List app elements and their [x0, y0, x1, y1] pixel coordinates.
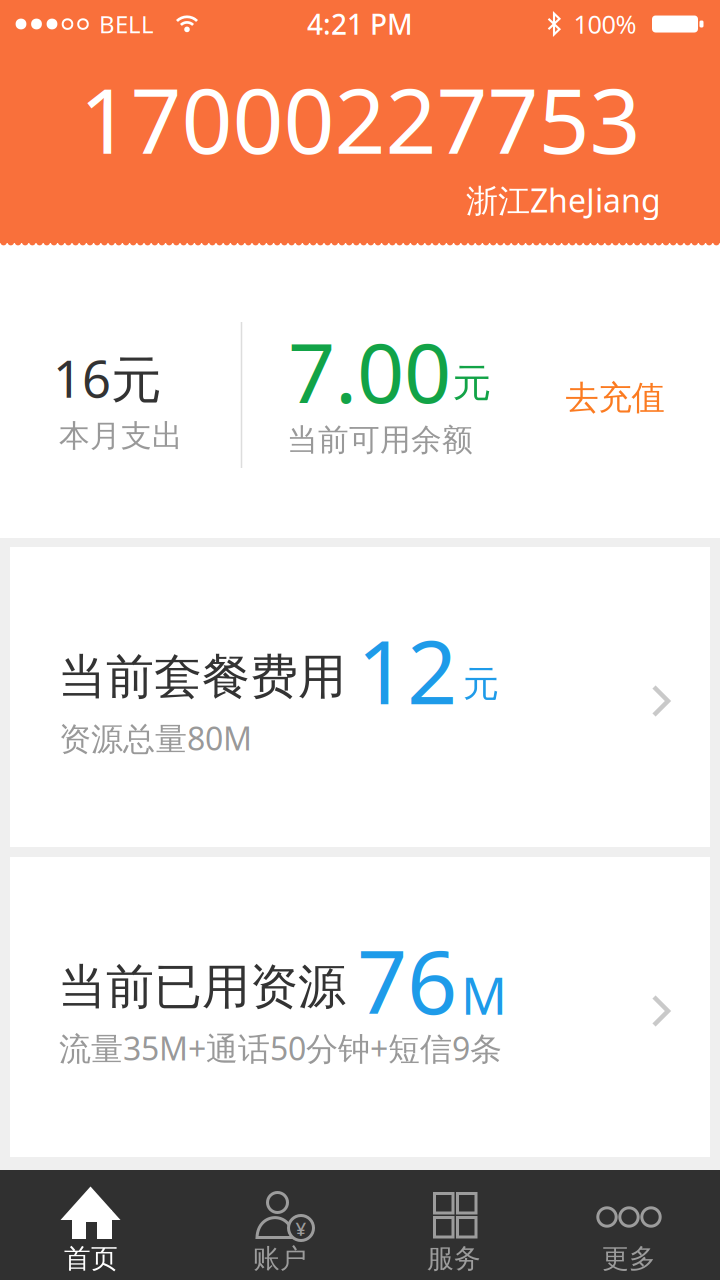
staticText: 16元 [53, 344, 162, 412]
staticText: 元 [452, 359, 491, 407]
staticText: 4:21 PM [307, 5, 413, 43]
staticText: 当前可用余额 [287, 421, 473, 459]
staticText: 去充值 [565, 377, 664, 418]
button[interactable]: 去充值 [545, 368, 685, 428]
staticText: 元 [463, 662, 499, 706]
button[interactable]: 当前已用资源 [10, 857, 710, 1157]
staticText: 本月支出 [59, 417, 183, 455]
staticText: 76 [357, 922, 457, 1038]
staticText: 流量35M+通话50分钟+短信9条 [59, 1027, 502, 1069]
staticText: 服务 [427, 1242, 481, 1275]
button[interactable]: 更多 [540, 1170, 720, 1280]
staticText: 17000227753 [79, 60, 640, 178]
staticText: 资源总量80M [59, 717, 252, 759]
button[interactable]: 首页 [0, 1170, 180, 1280]
button[interactable]: 服务 [360, 1170, 540, 1280]
staticText: 当前已用资源 [58, 957, 346, 1016]
staticText: 当前套餐费用 [58, 647, 346, 706]
staticText: 7.00 [288, 316, 451, 426]
staticText: BELL [99, 8, 154, 40]
staticText: 更多 [602, 1242, 656, 1275]
staticText: M [461, 961, 507, 1029]
button[interactable]: 当前套餐费用 [10, 547, 710, 847]
button[interactable]: ¥ [180, 1170, 360, 1280]
staticText: ¥ [295, 1216, 306, 1241]
staticText: 100% [573, 7, 636, 41]
staticText: 浙江ZheJiang [466, 179, 661, 221]
staticText: 账户 [253, 1242, 307, 1275]
staticText: 12 [357, 612, 457, 728]
staticText: 首页 [64, 1242, 118, 1275]
